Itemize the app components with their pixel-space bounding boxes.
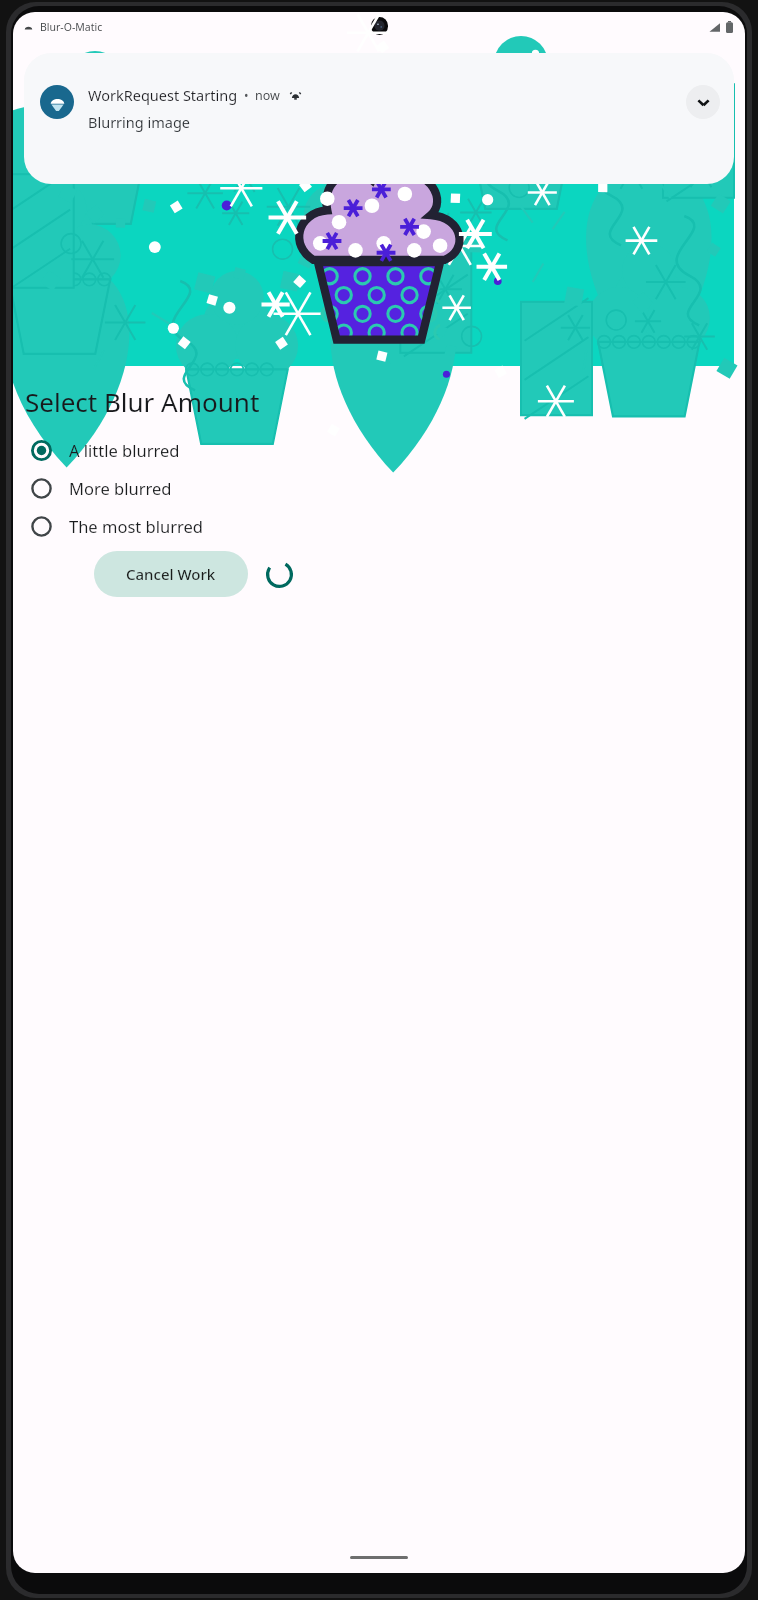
button[interactable]: A little blurred bbox=[13, 431, 745, 469]
staticText: A little blurred bbox=[69, 439, 180, 461]
button[interactable]: WorkRequest Starting bbox=[24, 53, 734, 184]
staticText: WorkRequest Starting bbox=[88, 85, 238, 105]
staticText: Blurring image bbox=[88, 112, 191, 132]
staticText: Cancel Work bbox=[126, 564, 216, 584]
staticText: Select Blur Amount bbox=[25, 384, 260, 419]
staticText: • bbox=[244, 87, 249, 103]
button[interactable]: Cancel Work bbox=[94, 551, 248, 597]
button[interactable]: Expand notification bbox=[686, 85, 720, 119]
button[interactable]: The most blurred bbox=[13, 507, 745, 545]
staticText: The most blurred bbox=[69, 515, 203, 537]
staticText: now bbox=[255, 87, 280, 104]
staticText: More blurred bbox=[69, 477, 172, 499]
staticText: Blur-O-Matic bbox=[40, 20, 103, 34]
button[interactable]: More blurred bbox=[13, 469, 745, 507]
